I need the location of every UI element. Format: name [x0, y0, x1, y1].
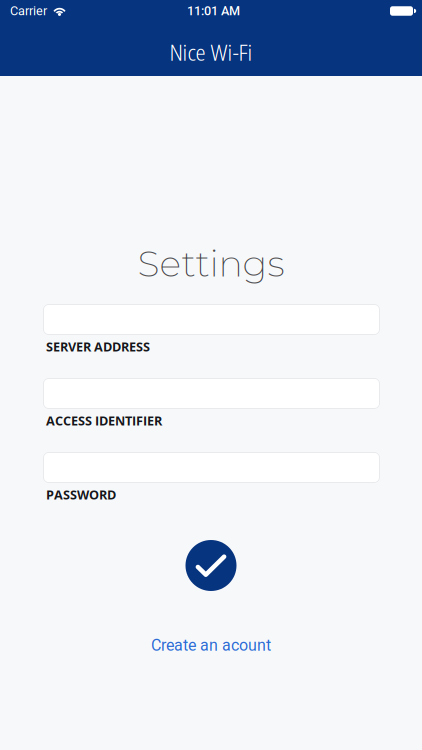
button[interactable]: ACCESS IDENTIFIER [43, 378, 380, 409]
staticText: PASSWORD [46, 486, 116, 503]
staticText: ACCESS IDENTIFIER [46, 412, 162, 429]
staticText: Create an acount [151, 636, 271, 655]
staticText: Settings [137, 241, 284, 286]
staticText: Nice Wi-Fi [169, 37, 252, 67]
button[interactable]: Create an acount [151, 636, 271, 655]
staticText: Carrier [10, 4, 47, 18]
button[interactable]: SERVER ADDRESS [43, 304, 380, 335]
staticText: SERVER ADDRESS [46, 338, 150, 355]
button[interactable]: PASSWORD [43, 452, 380, 483]
button[interactable]: Submit [185, 540, 236, 591]
staticText: 11:01 AM [187, 4, 240, 18]
